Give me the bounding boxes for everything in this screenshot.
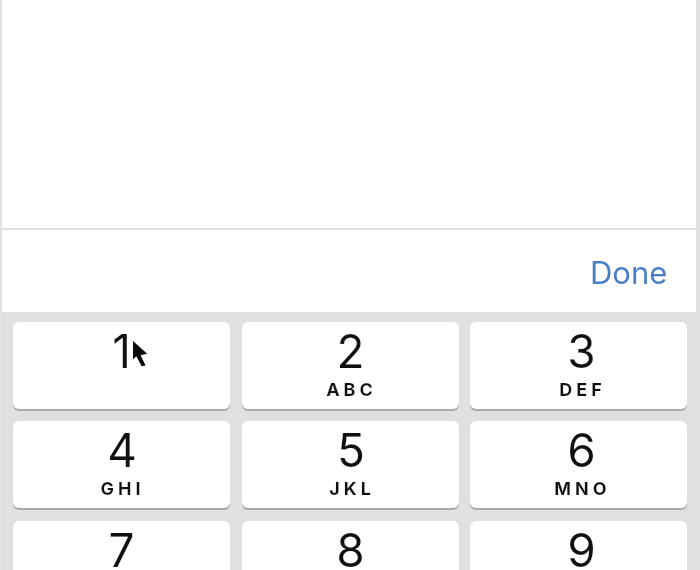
staticText: 8 <box>336 522 365 570</box>
staticText: 9 <box>567 522 596 570</box>
staticText: DEF <box>559 379 606 401</box>
staticText: 5 <box>337 422 365 478</box>
button[interactable]: 2 <box>242 322 459 409</box>
staticText: 1 <box>112 323 131 379</box>
button[interactable]: 4 <box>13 421 230 508</box>
staticText: 7 <box>108 522 135 570</box>
button[interactable]: 6 <box>470 421 687 508</box>
staticText: 4 <box>107 422 137 478</box>
staticText: 2 <box>336 323 365 379</box>
staticText: 6 <box>567 422 596 478</box>
other: Pointer <box>133 341 148 367</box>
button[interactable]: 8 <box>242 521 459 570</box>
button[interactable]: 1 <box>13 322 230 409</box>
staticText: GHI <box>100 478 145 500</box>
button[interactable]: 3 <box>470 322 687 409</box>
staticText: 3 <box>567 323 596 379</box>
button[interactable]: 9 <box>470 521 687 570</box>
button[interactable]: 7 <box>13 521 230 570</box>
staticText: MNO <box>554 478 611 500</box>
staticText: Done <box>590 254 668 292</box>
staticText: JKL <box>329 478 375 500</box>
button[interactable]: 5 <box>242 421 459 508</box>
button[interactable]: Done <box>590 254 668 292</box>
staticText: ABC <box>326 379 377 401</box>
